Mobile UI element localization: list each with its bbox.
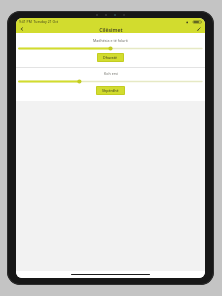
staticText: 9:41 PM Tuesday 21 Oct <box>19 19 59 24</box>
staticText: Madhësia e të folurit <box>93 38 128 43</box>
button[interactable]: Edit <box>193 25 205 33</box>
button[interactable]: Shpërdhë <box>96 86 125 95</box>
button[interactable] <box>19 79 202 84</box>
button[interactable]: Back <box>16 25 28 33</box>
button[interactable]: Dhuratë <box>97 53 124 62</box>
staticText: Cilësimet <box>99 26 123 33</box>
staticText: Dhuratë <box>103 55 118 60</box>
staticText: Shpërdhë <box>102 88 119 93</box>
staticText: Koh ervi <box>104 71 118 76</box>
button[interactable] <box>19 46 202 51</box>
